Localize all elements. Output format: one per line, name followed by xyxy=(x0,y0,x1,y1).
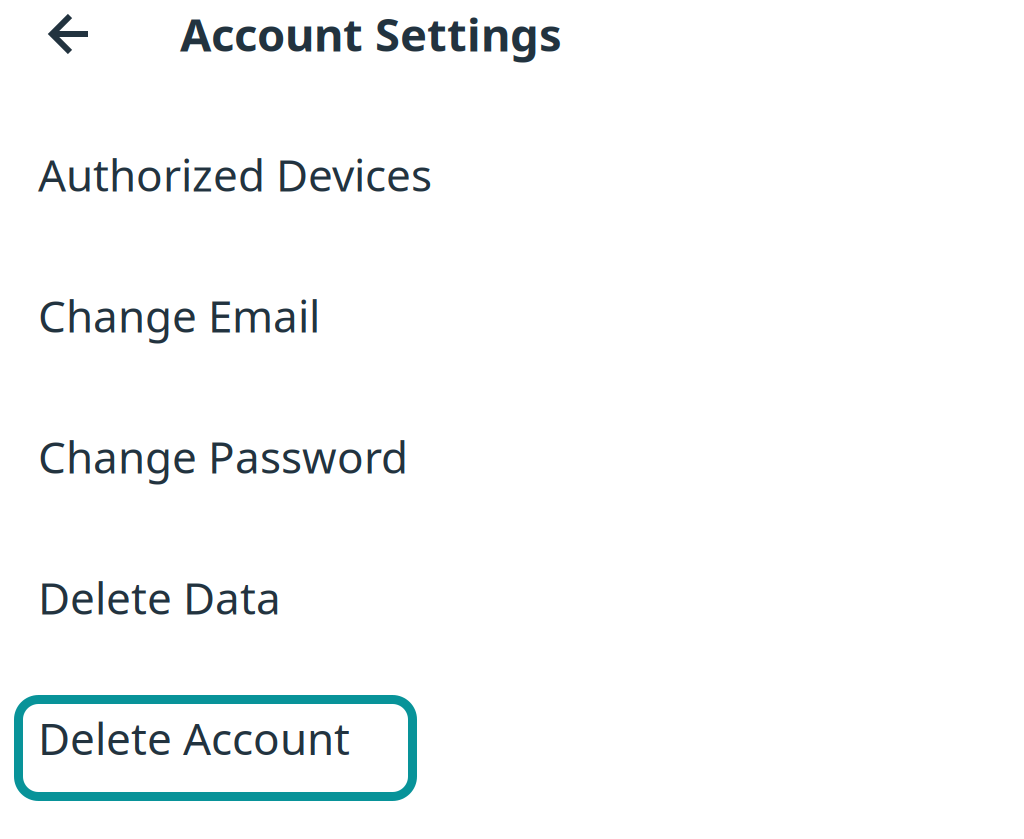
staticText: Authorized Devices xyxy=(38,145,432,204)
button[interactable]: Change Password xyxy=(0,386,1024,527)
staticText: Delete Account xyxy=(38,709,350,767)
button[interactable]: Back xyxy=(0,0,111,68)
button[interactable]: Delete Account xyxy=(0,668,1024,809)
staticText: Delete Data xyxy=(38,568,281,627)
staticText: Account Settings xyxy=(180,4,562,64)
button[interactable]: Delete Data xyxy=(0,527,1024,668)
staticText: Change Email xyxy=(38,286,320,345)
button[interactable]: Change Email xyxy=(0,245,1024,386)
staticText: Change Password xyxy=(38,427,408,486)
button[interactable]: Authorized Devices xyxy=(0,104,1024,245)
